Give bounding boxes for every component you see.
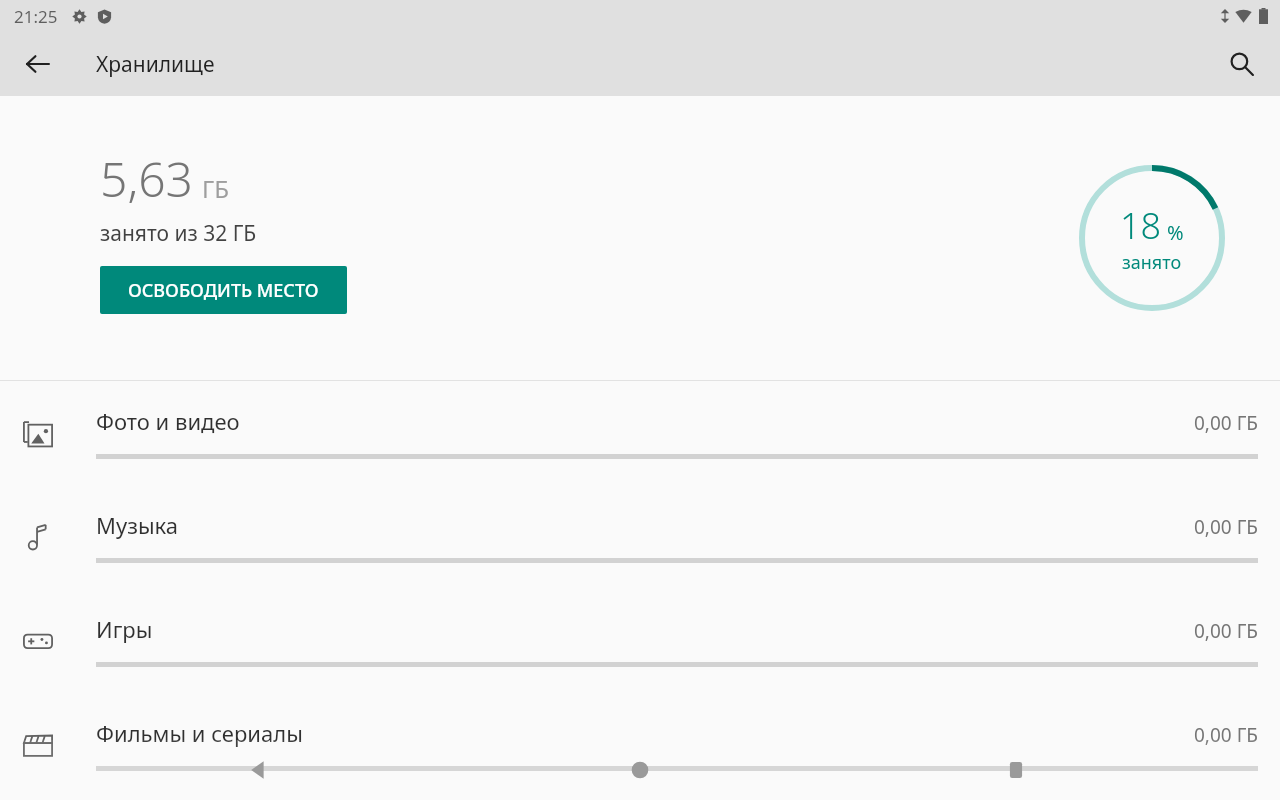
staticText: ГБ bbox=[202, 172, 229, 205]
button[interactable]: Музыка bbox=[0, 485, 1280, 589]
staticText: Фильмы и сериалы bbox=[96, 718, 303, 748]
staticText: 0,00 ГБ bbox=[1194, 410, 1258, 436]
staticText: 18 bbox=[1120, 201, 1162, 250]
staticText: 0,00 ГБ bbox=[1194, 722, 1258, 748]
staticText: Игры bbox=[96, 614, 153, 644]
button[interactable]: Игры bbox=[0, 589, 1280, 693]
staticText: ОСВОБОДИТЬ МЕСТО bbox=[128, 278, 319, 303]
staticText: занято bbox=[1122, 250, 1182, 275]
staticText: Хранилище bbox=[96, 50, 215, 79]
staticText: 0,00 ГБ bbox=[1194, 618, 1258, 644]
button[interactable]: Recents bbox=[988, 742, 1044, 798]
button[interactable]: Back bbox=[230, 742, 286, 798]
staticText: 5,63 bbox=[100, 146, 194, 211]
staticText: % bbox=[1167, 219, 1184, 246]
button[interactable]: Home bbox=[612, 742, 668, 798]
staticText: Фото и видео bbox=[96, 406, 240, 436]
staticText: Музыка bbox=[96, 510, 179, 540]
button[interactable]: Фото и видео bbox=[0, 381, 1280, 485]
staticText: 0,00 ГБ bbox=[1194, 514, 1258, 540]
button[interactable]: ОСВОБОДИТЬ МЕСТО bbox=[100, 266, 347, 314]
staticText: 21:25 bbox=[14, 5, 58, 28]
button[interactable]: Search bbox=[1218, 40, 1266, 88]
staticText: занято из 32 ГБ bbox=[100, 219, 257, 248]
button[interactable]: Back bbox=[14, 40, 62, 88]
button[interactable]: Фильмы и сериалы bbox=[0, 693, 1280, 797]
